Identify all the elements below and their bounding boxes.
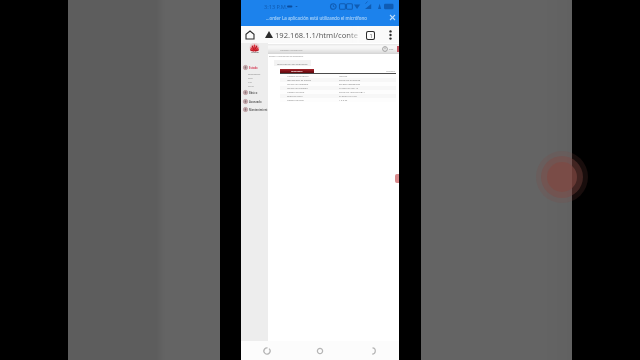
staticText: Dirección física	[287, 95, 339, 98]
staticText: Dispositivos	[248, 73, 261, 76]
button[interactable]: Versión de hardware	[280, 82, 396, 86]
staticText: Información del dispositivo	[277, 62, 308, 65]
staticText: Versión de firmware	[287, 87, 339, 90]
button[interactable]: Número de serie	[280, 90, 396, 94]
staticText: Identificador de equipo	[287, 79, 339, 82]
button[interactable]: Estado	[241, 64, 268, 71]
staticText: 48575443-1896.5D9AB17	[339, 91, 365, 94]
staticText: 4c:8b:52:23:41:56	[339, 95, 357, 98]
button[interactable]: Más opciones	[383, 27, 398, 42]
staticText: Avanzado	[249, 100, 262, 104]
button[interactable]: Nombre de producto	[280, 74, 396, 78]
button[interactable]: Avanzado	[241, 98, 268, 105]
staticText: …order La aplicación está utilizando el …	[266, 15, 367, 21]
staticText: Salir	[389, 48, 394, 51]
button[interactable]: WLAN	[241, 84, 268, 88]
button[interactable]: Básico	[241, 89, 268, 96]
staticText: 48575443-5A484D4E	[339, 79, 361, 82]
staticText: Actualizar	[386, 70, 396, 73]
button[interactable]: Mantenimiento	[241, 106, 268, 113]
staticText: Gateway residencial	[280, 48, 303, 51]
staticText: Número de serie	[287, 91, 339, 94]
button[interactable]: Dispositivos	[241, 72, 268, 76]
staticText: 192.168.1.1/html/conte	[275, 30, 358, 40]
button[interactable]: Versión de firmware	[280, 86, 396, 90]
staticText: Versión de hardware	[287, 83, 339, 86]
staticText: Dispositivo	[291, 70, 303, 73]
staticText: WLAN	[248, 85, 255, 88]
button[interactable]: Cerrar aviso	[388, 13, 397, 22]
button[interactable]: Pestañas abiertas	[362, 27, 378, 43]
button[interactable]: Dispositivo	[280, 69, 314, 73]
button[interactable]: Inicio	[243, 28, 257, 42]
staticText: 1 D 8 35	[339, 99, 348, 102]
button[interactable]: Información del dispositivo	[274, 60, 311, 66]
button[interactable]: Salir	[382, 46, 394, 52]
button[interactable]: Ayuda	[395, 174, 399, 183]
staticText: Tiempo de inicio	[287, 99, 339, 102]
staticText: HUAWEI	[251, 51, 259, 54]
staticText: Estado	[249, 66, 258, 70]
staticText: 86FE0257E9B8E38F6	[339, 83, 361, 86]
staticText: HG8245	[339, 75, 348, 78]
staticText: Nombre de producto	[287, 75, 339, 78]
button[interactable]: WAN	[241, 76, 268, 80]
button[interactable]: Identificador de equipo	[280, 78, 396, 82]
button[interactable]: Inicio	[293, 341, 346, 360]
staticText: Mantenimiento	[249, 108, 268, 112]
staticText: 3:13 P.M.	[264, 3, 288, 11]
staticText: 1	[369, 32, 373, 39]
staticText: Básico	[249, 91, 258, 95]
button[interactable]: Aplicaciones recientes	[346, 341, 399, 360]
button[interactable]: Actualizar	[386, 70, 396, 73]
button[interactable]: Dirección física	[280, 94, 396, 98]
staticText: LAN	[248, 81, 253, 84]
button[interactable]: Tiempo de inicio	[280, 98, 396, 102]
staticText: V100R013C10S115	[339, 87, 359, 90]
staticText: Estado > Información del dispositivo	[269, 55, 304, 58]
staticText: WAN	[248, 77, 254, 80]
button[interactable]: LAN	[241, 80, 268, 84]
button[interactable]: Atrás	[241, 341, 293, 360]
